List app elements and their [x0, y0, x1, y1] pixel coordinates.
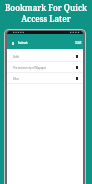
- staticText: Access Later: [21, 13, 71, 24]
- button[interactable]: The ancient city of Mayapur: [7, 62, 83, 73]
- button[interactable]: CLEAR: [72, 41, 82, 45]
- button[interactable]: Dhor: [7, 73, 83, 84]
- staticText: Vidhi: [13, 54, 19, 59]
- staticText: CLEAR: [75, 41, 82, 45]
- button[interactable]: Vidhi: [7, 51, 83, 62]
- staticText: Bookmark: [18, 41, 28, 45]
- staticText: The ancient city of Mayapur: [13, 65, 47, 70]
- staticText: Bookmark For Quick: [5, 2, 87, 13]
- staticText: Dhor: [13, 76, 20, 81]
